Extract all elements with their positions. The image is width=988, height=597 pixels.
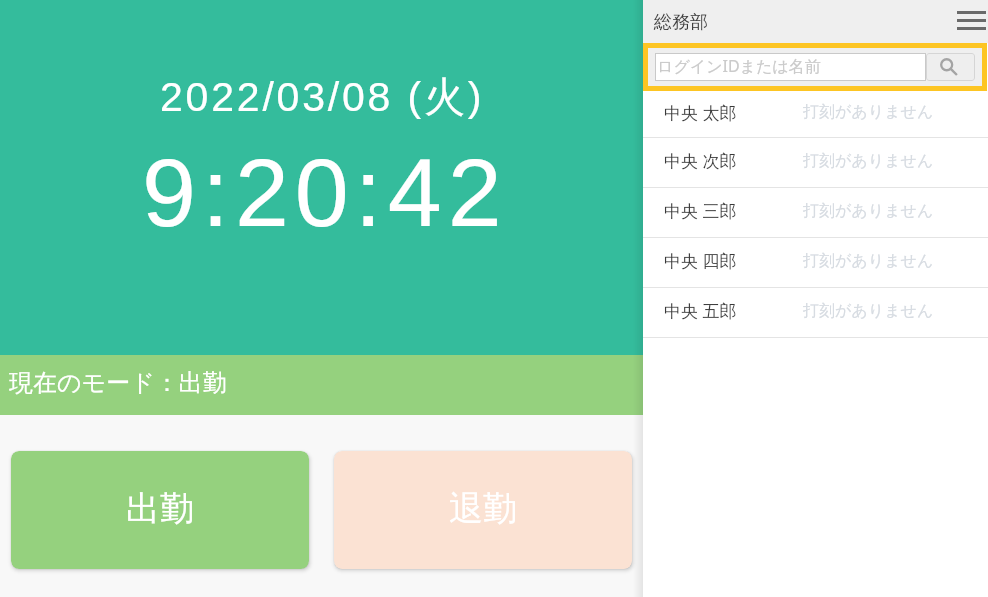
- staticText: 中央 三郎: [664, 199, 803, 222]
- staticText: 中央 四郎: [664, 249, 803, 272]
- staticText: 出勤: [126, 487, 194, 530]
- staticText: 中央 五郎: [664, 299, 803, 322]
- button[interactable]: 出勤: [11, 451, 309, 569]
- button[interactable]: 退勤: [334, 451, 632, 569]
- staticText: 退勤: [449, 487, 517, 530]
- staticText: ログインIDまたは名前: [657, 55, 821, 77]
- staticText: 中央 太郎: [664, 101, 803, 124]
- button[interactable]: 中央 次郎: [643, 138, 988, 188]
- button[interactable]: Menu: [945, 0, 988, 43]
- staticText: 総務部: [654, 11, 708, 34]
- staticText: 打刻がありません: [803, 151, 934, 171]
- button[interactable]: 中央 三郎: [643, 188, 988, 238]
- staticText: 打刻がありません: [803, 301, 934, 321]
- staticText: 現在のモード：出勤: [9, 368, 227, 398]
- button[interactable]: 中央 五郎: [643, 288, 988, 338]
- staticText: 2022/03/08 (火): [160, 72, 485, 124]
- staticText: 9:20:42: [142, 138, 508, 246]
- button[interactable]: 中央 四郎: [643, 238, 988, 288]
- staticText: 中央 次郎: [664, 149, 803, 172]
- button[interactable]: 中央 太郎: [643, 91, 988, 138]
- staticText: 打刻がありません: [803, 102, 934, 122]
- button[interactable]: Search: [926, 53, 975, 81]
- staticText: 打刻がありません: [803, 201, 934, 221]
- staticText: 打刻がありません: [803, 251, 934, 271]
- button[interactable]: ログインIDまたは名前: [655, 53, 926, 81]
